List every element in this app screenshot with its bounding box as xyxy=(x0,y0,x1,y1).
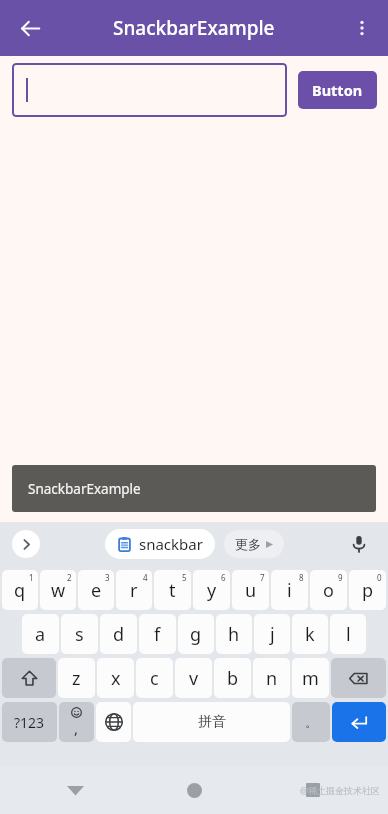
button[interactable]: p xyxy=(349,570,386,610)
button[interactable]: 拼音 xyxy=(133,702,290,742)
button[interactable]: Voice input xyxy=(344,529,374,559)
button[interactable]: z xyxy=(58,658,95,698)
staticText: n xyxy=(266,666,278,691)
button[interactable]: Recent apps xyxy=(296,773,330,807)
button[interactable]: Home xyxy=(177,773,211,807)
staticText: 8 xyxy=(299,572,304,583)
button[interactable]: Emoji and comma xyxy=(59,702,94,742)
staticText: d xyxy=(113,622,125,647)
staticText: i xyxy=(287,578,292,603)
staticText: q xyxy=(14,578,26,603)
button[interactable]: t xyxy=(154,570,191,610)
staticText: 1 xyxy=(29,572,34,583)
staticText: 2 xyxy=(67,572,72,583)
button[interactable]: j xyxy=(254,614,290,654)
staticText: , xyxy=(74,718,79,738)
staticText: ?123 xyxy=(14,713,45,732)
staticText: o xyxy=(323,578,334,603)
button[interactable]: b xyxy=(214,658,251,698)
button[interactable]: snackbar xyxy=(105,529,215,559)
button[interactable]: Back xyxy=(10,8,50,48)
staticText: f xyxy=(154,622,161,647)
button[interactable]: k xyxy=(292,614,328,654)
button[interactable] xyxy=(12,63,287,117)
button[interactable]: h xyxy=(216,614,252,654)
button[interactable]: s xyxy=(61,614,98,654)
staticText: v xyxy=(189,666,199,691)
button[interactable]: Enter xyxy=(332,702,386,742)
staticText: 6 xyxy=(221,572,226,583)
button[interactable]: q xyxy=(2,570,38,610)
staticText: y xyxy=(207,578,217,603)
button[interactable]: Back xyxy=(58,773,92,807)
staticText: l xyxy=(346,622,351,647)
staticText: j xyxy=(270,622,275,647)
staticText: snackbar xyxy=(139,534,203,554)
button[interactable]: x xyxy=(97,658,134,698)
staticText: e xyxy=(91,578,102,603)
staticText: p xyxy=(362,578,374,603)
staticText: b xyxy=(227,666,239,691)
button[interactable]: v xyxy=(175,658,212,698)
staticText: 7 xyxy=(260,572,265,583)
button[interactable]: Shift xyxy=(2,658,56,698)
staticText: 更多 xyxy=(235,536,261,552)
button[interactable]: Expand toolbar xyxy=(12,530,40,558)
button[interactable]: 更多 xyxy=(224,530,284,558)
button[interactable]: e xyxy=(78,570,114,610)
staticText: t xyxy=(169,578,176,603)
staticText: x xyxy=(111,666,121,691)
button[interactable]: y xyxy=(193,570,230,610)
staticText: h xyxy=(228,622,240,647)
staticText: SnackbarExample xyxy=(28,480,141,498)
button[interactable]: More options xyxy=(342,8,382,48)
staticText: 3 xyxy=(105,572,110,583)
button[interactable]: ?123 xyxy=(2,702,57,742)
button[interactable]: f xyxy=(139,614,176,654)
staticText: 。 xyxy=(305,714,318,730)
button[interactable]: c xyxy=(136,658,173,698)
button[interactable]: Change language xyxy=(96,702,131,742)
staticText: a xyxy=(35,622,46,647)
staticText: 5 xyxy=(182,572,187,583)
button[interactable]: SnackbarExample xyxy=(12,465,376,512)
staticText: m xyxy=(302,666,319,691)
button[interactable]: i xyxy=(271,570,308,610)
button[interactable]: o xyxy=(310,570,347,610)
staticText: SnackbarExample xyxy=(113,15,275,41)
staticText: w xyxy=(51,578,66,603)
button[interactable]: a xyxy=(22,614,59,654)
staticText: z xyxy=(72,666,81,691)
staticText: g xyxy=(190,622,202,647)
button[interactable]: u xyxy=(232,570,269,610)
staticText: Button xyxy=(312,80,363,100)
staticText: r xyxy=(130,578,138,603)
button[interactable]: n xyxy=(253,658,290,698)
button[interactable]: 。 xyxy=(292,702,330,742)
button[interactable]: Backspace xyxy=(331,658,386,698)
staticText: k xyxy=(305,622,315,647)
button[interactable]: Button xyxy=(298,71,377,109)
staticText: 0 xyxy=(377,572,382,583)
staticText: 4 xyxy=(143,572,148,583)
button[interactable]: l xyxy=(330,614,366,654)
button[interactable]: g xyxy=(178,614,214,654)
button[interactable]: d xyxy=(100,614,137,654)
button[interactable]: w xyxy=(40,570,76,610)
button[interactable]: r xyxy=(116,570,152,610)
staticText: s xyxy=(75,622,84,647)
staticText: 拼音 xyxy=(198,713,226,731)
staticText: u xyxy=(245,578,257,603)
button[interactable]: m xyxy=(292,658,329,698)
staticText: c xyxy=(150,666,159,691)
staticText: @稀土掘金技术社区 xyxy=(299,784,380,796)
staticText: 9 xyxy=(338,572,343,583)
